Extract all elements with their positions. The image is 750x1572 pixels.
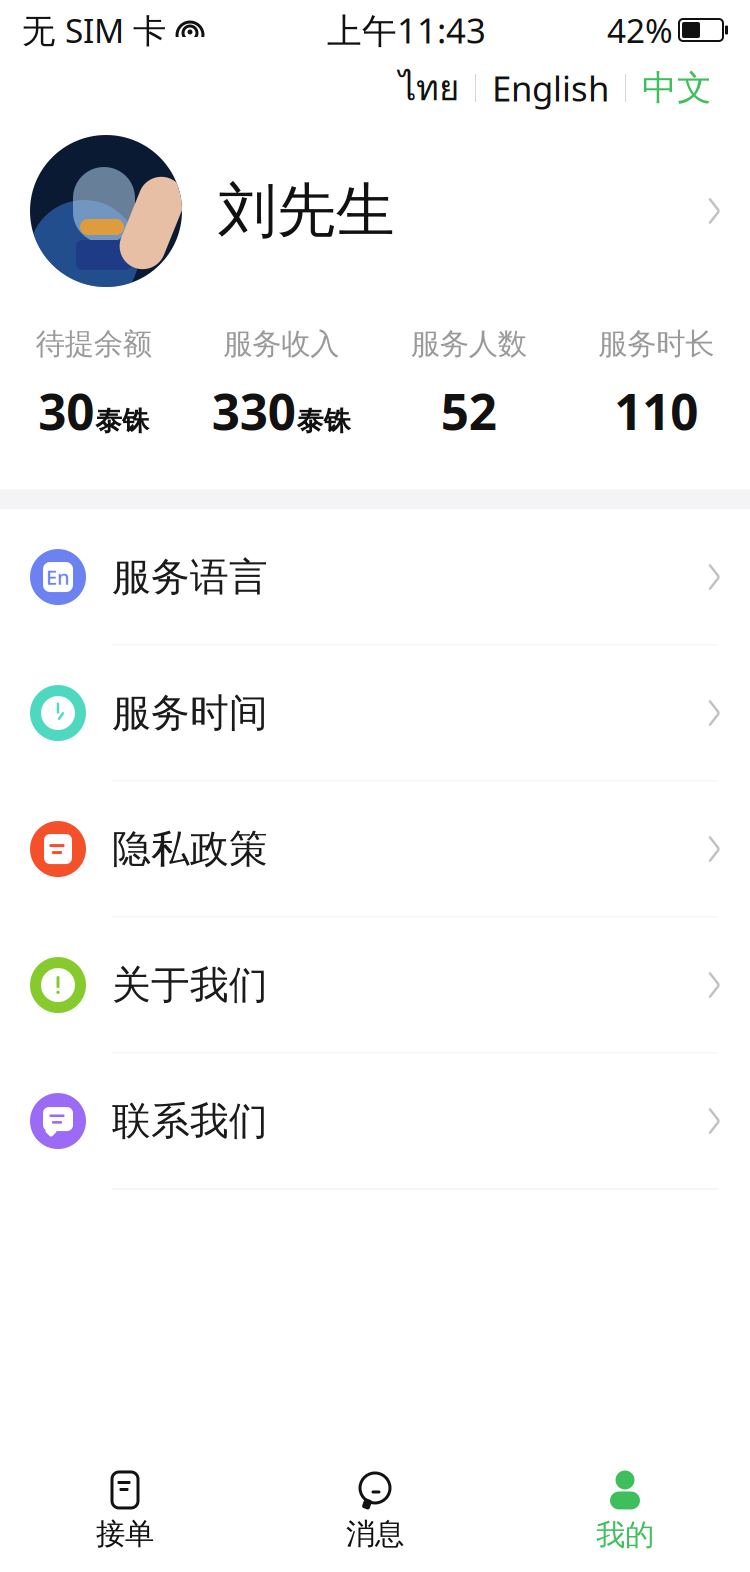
staticText: 上午11:43 bbox=[327, 7, 486, 53]
staticText: 无 SIM 卡 bbox=[22, 8, 166, 52]
staticText: En bbox=[46, 564, 70, 590]
button[interactable]: 中文 bbox=[626, 59, 728, 117]
staticText: English bbox=[492, 65, 609, 111]
button[interactable]: En bbox=[0, 509, 750, 645]
staticText: 服务时间 bbox=[112, 689, 268, 737]
staticText: 服务人数 bbox=[411, 326, 527, 362]
staticText: 待提余额 bbox=[36, 326, 152, 362]
staticText: 刘先生 bbox=[218, 175, 395, 247]
button[interactable]: 消息 bbox=[250, 1450, 500, 1572]
button[interactable]: English bbox=[476, 57, 625, 119]
staticText: 服务语言 bbox=[112, 553, 268, 601]
button[interactable]: ไทย bbox=[383, 53, 475, 123]
button[interactable]: 我的 bbox=[500, 1450, 750, 1572]
staticText: 30 bbox=[38, 378, 94, 443]
staticText: 泰铢 bbox=[297, 405, 351, 437]
button[interactable]: 刘先生 bbox=[0, 116, 750, 306]
button[interactable]: 联系我们 bbox=[0, 1053, 750, 1189]
staticText: 服务时长 bbox=[598, 326, 714, 362]
button[interactable]: 关于我们 bbox=[0, 917, 750, 1053]
staticText: 42% bbox=[607, 8, 673, 52]
staticText: 泰铢 bbox=[95, 405, 149, 437]
staticText: 我的 bbox=[596, 1517, 654, 1553]
staticText: ไทย bbox=[399, 61, 459, 115]
staticText: 110 bbox=[614, 378, 698, 443]
staticText: 关于我们 bbox=[112, 961, 268, 1009]
staticText: 52 bbox=[441, 378, 497, 443]
staticText: 接单 bbox=[96, 1516, 154, 1552]
staticText: 服务收入 bbox=[223, 326, 339, 362]
staticText: 联系我们 bbox=[112, 1097, 268, 1145]
staticText: 消息 bbox=[346, 1516, 404, 1552]
button[interactable]: 服务时间 bbox=[0, 645, 750, 781]
button[interactable]: 隐私政策 bbox=[0, 781, 750, 917]
staticText: 中文 bbox=[642, 67, 712, 109]
button[interactable]: 接单 bbox=[0, 1450, 250, 1572]
staticText: 330 bbox=[212, 378, 296, 443]
staticText: 隐私政策 bbox=[112, 825, 268, 873]
